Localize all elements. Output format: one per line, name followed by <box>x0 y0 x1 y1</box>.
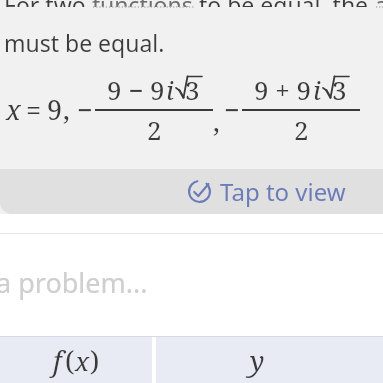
staticText: = <box>26 91 42 128</box>
staticText: i <box>313 72 321 107</box>
staticText: 2 <box>147 112 162 147</box>
staticText: 9 + 9 <box>254 72 312 107</box>
staticText: 9 <box>47 91 63 128</box>
button[interactable]: f <box>0 337 152 383</box>
staticText: y <box>250 342 265 379</box>
staticText: ) <box>90 342 100 379</box>
staticText: i <box>166 72 174 107</box>
staticText: x <box>6 91 21 128</box>
staticText: 2 <box>294 112 309 147</box>
button[interactable]: a problem... <box>0 234 383 318</box>
staticText: 9 − 9 <box>107 72 165 107</box>
button[interactable]: y <box>156 337 383 383</box>
staticText: 3 <box>185 72 200 107</box>
staticText: f <box>53 342 62 379</box>
staticText: a problem... <box>0 264 148 301</box>
staticText: − <box>77 91 93 128</box>
staticText: For two <box>4 0 92 7</box>
staticText: , <box>63 91 70 128</box>
staticText: functions <box>92 0 193 7</box>
button[interactable]: Tap to view steps <box>0 169 383 214</box>
staticText: 3 <box>332 72 347 107</box>
staticText: a <box>375 0 383 7</box>
staticText: must be equal. <box>4 27 165 58</box>
staticText: x <box>75 343 90 378</box>
staticText: ( <box>65 342 75 379</box>
staticText: , <box>213 103 220 140</box>
staticText: to be equal, the <box>193 0 375 7</box>
staticText: − <box>224 91 240 128</box>
staticText: Tap to view steps <box>220 175 383 208</box>
